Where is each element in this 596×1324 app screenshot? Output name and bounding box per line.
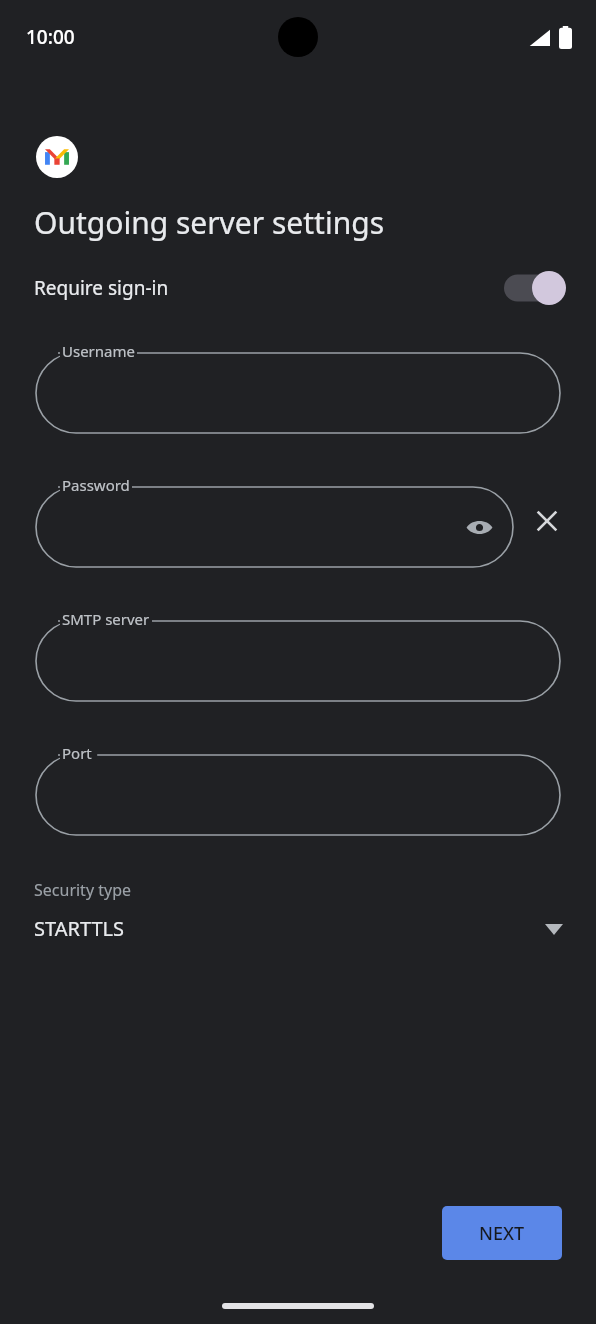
staticText: Password: [62, 475, 130, 495]
button[interactable]: SMTP server: [36, 609, 560, 701]
staticText: NEXT: [479, 1221, 525, 1246]
staticText: Port: [62, 743, 92, 763]
button[interactable]: NEXT: [442, 1206, 562, 1260]
button[interactable]: Gmail: [36, 136, 78, 178]
button[interactable]: Show password: [461, 509, 497, 545]
button[interactable]: Require sign-in: [0, 265, 596, 311]
staticText: Outgoing server settings: [34, 202, 385, 243]
button[interactable]: Require sign-in toggle: [504, 271, 566, 305]
staticText: Username: [62, 341, 135, 361]
button[interactable]: Security type: [0, 875, 596, 946]
button[interactable]: Password: [36, 475, 513, 567]
staticText: 10:00: [26, 24, 75, 50]
button[interactable]: Username: [36, 341, 560, 433]
button[interactable]: Clear password: [525, 499, 569, 543]
staticText: Require sign-in: [34, 275, 169, 301]
button[interactable]: Port: [36, 743, 560, 835]
staticText: Security type: [34, 879, 132, 901]
staticText: SMTP server: [62, 609, 150, 629]
staticText: STARTTLS: [34, 915, 125, 942]
